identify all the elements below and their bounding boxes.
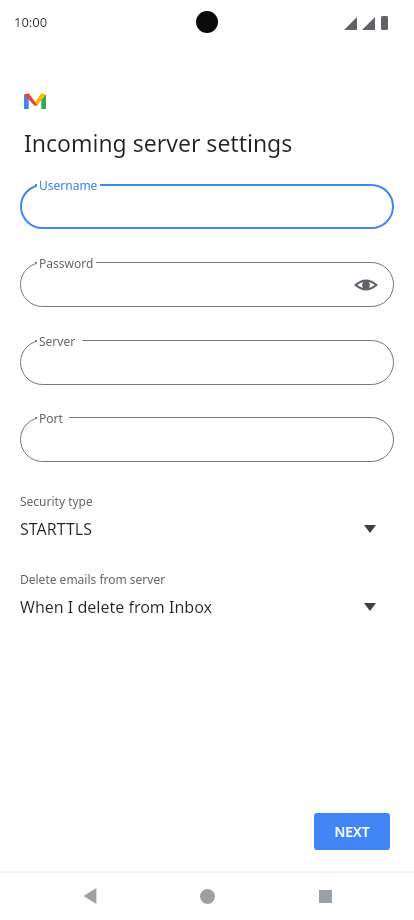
button[interactable]: Port <box>20 417 394 462</box>
button[interactable]: Home <box>179 872 235 920</box>
staticText: Incoming server settings <box>24 127 293 158</box>
button[interactable]: Password <box>20 262 394 307</box>
button[interactable]: Show password <box>350 269 382 301</box>
staticText: Server <box>39 333 76 349</box>
button[interactable]: Server <box>20 340 394 385</box>
button[interactable]: NEXT <box>314 813 390 850</box>
staticText: Delete emails from server <box>20 571 166 587</box>
staticText: Security type <box>20 493 93 509</box>
button[interactable]: Username <box>20 184 394 229</box>
button[interactable]: Back <box>62 872 118 920</box>
button[interactable]: Delete emails from server <box>20 569 394 620</box>
button[interactable]: Recent apps <box>297 872 353 920</box>
staticText: Password <box>39 255 94 271</box>
staticText: STARTTLS <box>20 518 364 540</box>
button[interactable]: Security type <box>20 491 394 542</box>
staticText: Username <box>39 177 98 193</box>
staticText: 10:00 <box>14 13 48 31</box>
staticText: When I delete from Inbox <box>20 596 364 618</box>
staticText: NEXT <box>334 822 370 841</box>
staticText: Port <box>39 410 63 426</box>
